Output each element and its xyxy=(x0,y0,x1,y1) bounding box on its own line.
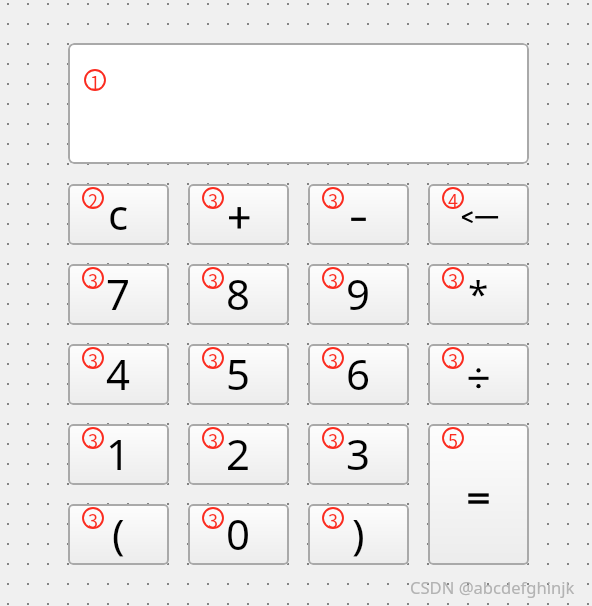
staticText: 3 xyxy=(328,187,338,209)
staticText: * xyxy=(468,267,489,317)
staticText: 5 xyxy=(448,427,458,449)
staticText: 3 xyxy=(88,267,98,289)
button[interactable]: 7 xyxy=(68,264,169,325)
button[interactable]: 5 xyxy=(188,344,289,405)
staticText: 6 xyxy=(346,345,371,402)
button[interactable]: Clear xyxy=(68,184,169,245)
button[interactable]: Subtract xyxy=(308,184,409,245)
staticText: ( xyxy=(112,505,125,562)
staticText: 3 xyxy=(448,347,458,369)
staticText: 2 xyxy=(226,425,251,482)
button[interactable]: ) xyxy=(308,504,409,565)
button[interactable]: Add xyxy=(188,184,289,245)
staticText: 7 xyxy=(106,265,131,322)
staticText: 3 xyxy=(328,507,338,529)
staticText: 2 xyxy=(88,187,98,209)
staticText: 1 xyxy=(106,425,131,482)
staticText: 3 xyxy=(346,425,371,482)
staticText: 3 xyxy=(328,267,338,289)
staticText: 3 xyxy=(88,347,98,369)
button[interactable]: 1 xyxy=(68,424,169,485)
staticText: 3 xyxy=(88,507,98,529)
staticText: 3 xyxy=(208,427,218,449)
staticText: 3 xyxy=(208,267,218,289)
staticText: 4 xyxy=(448,187,458,209)
button[interactable]: Calculator display xyxy=(68,43,529,164)
button[interactable]: ( xyxy=(68,504,169,565)
staticText: 0 xyxy=(226,505,251,562)
staticText: 3 xyxy=(328,347,338,369)
staticText: 3 xyxy=(88,427,98,449)
button[interactable]: 4 xyxy=(68,344,169,405)
button[interactable]: 6 xyxy=(308,344,409,405)
button[interactable]: Divide xyxy=(428,344,529,405)
button[interactable]: Equals xyxy=(428,424,529,565)
staticText: 1 xyxy=(90,69,100,91)
staticText: CSDN @abcdefghinjk xyxy=(410,576,575,599)
button[interactable]: 0 xyxy=(188,504,289,565)
staticText: 3 xyxy=(208,187,218,209)
button[interactable]: Multiply xyxy=(428,264,529,325)
staticText: ) xyxy=(352,505,365,562)
staticText: 3 xyxy=(208,347,218,369)
button[interactable]: 3 xyxy=(308,424,409,485)
staticText: c xyxy=(108,185,129,242)
staticText: 3 xyxy=(448,267,458,289)
staticText: 5 xyxy=(226,345,251,402)
staticText: 8 xyxy=(226,265,251,322)
staticText: 9 xyxy=(346,265,371,322)
staticText: 3 xyxy=(208,507,218,529)
staticText: 3 xyxy=(328,427,338,449)
button[interactable]: 2 xyxy=(188,424,289,485)
button[interactable]: 8 xyxy=(188,264,289,325)
staticText: 4 xyxy=(106,345,131,402)
button[interactable]: 9 xyxy=(308,264,409,325)
button[interactable]: Backspace xyxy=(428,184,529,245)
